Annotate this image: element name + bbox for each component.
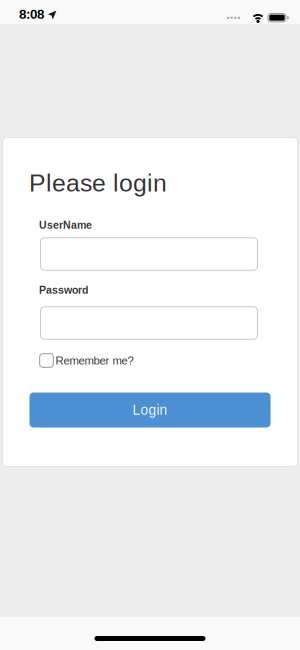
button[interactable]: Login (29, 392, 270, 427)
button[interactable]: Password (40, 306, 258, 340)
staticText: UserName (39, 219, 92, 231)
button[interactable]: UserName (40, 237, 258, 271)
staticText: Password (39, 284, 88, 296)
button[interactable]: Remember me? (39, 351, 199, 369)
staticText: Remember me? (55, 354, 133, 367)
staticText: 8:08 (19, 7, 44, 22)
staticText: Login (132, 402, 167, 418)
staticText: Please login (29, 169, 167, 197)
